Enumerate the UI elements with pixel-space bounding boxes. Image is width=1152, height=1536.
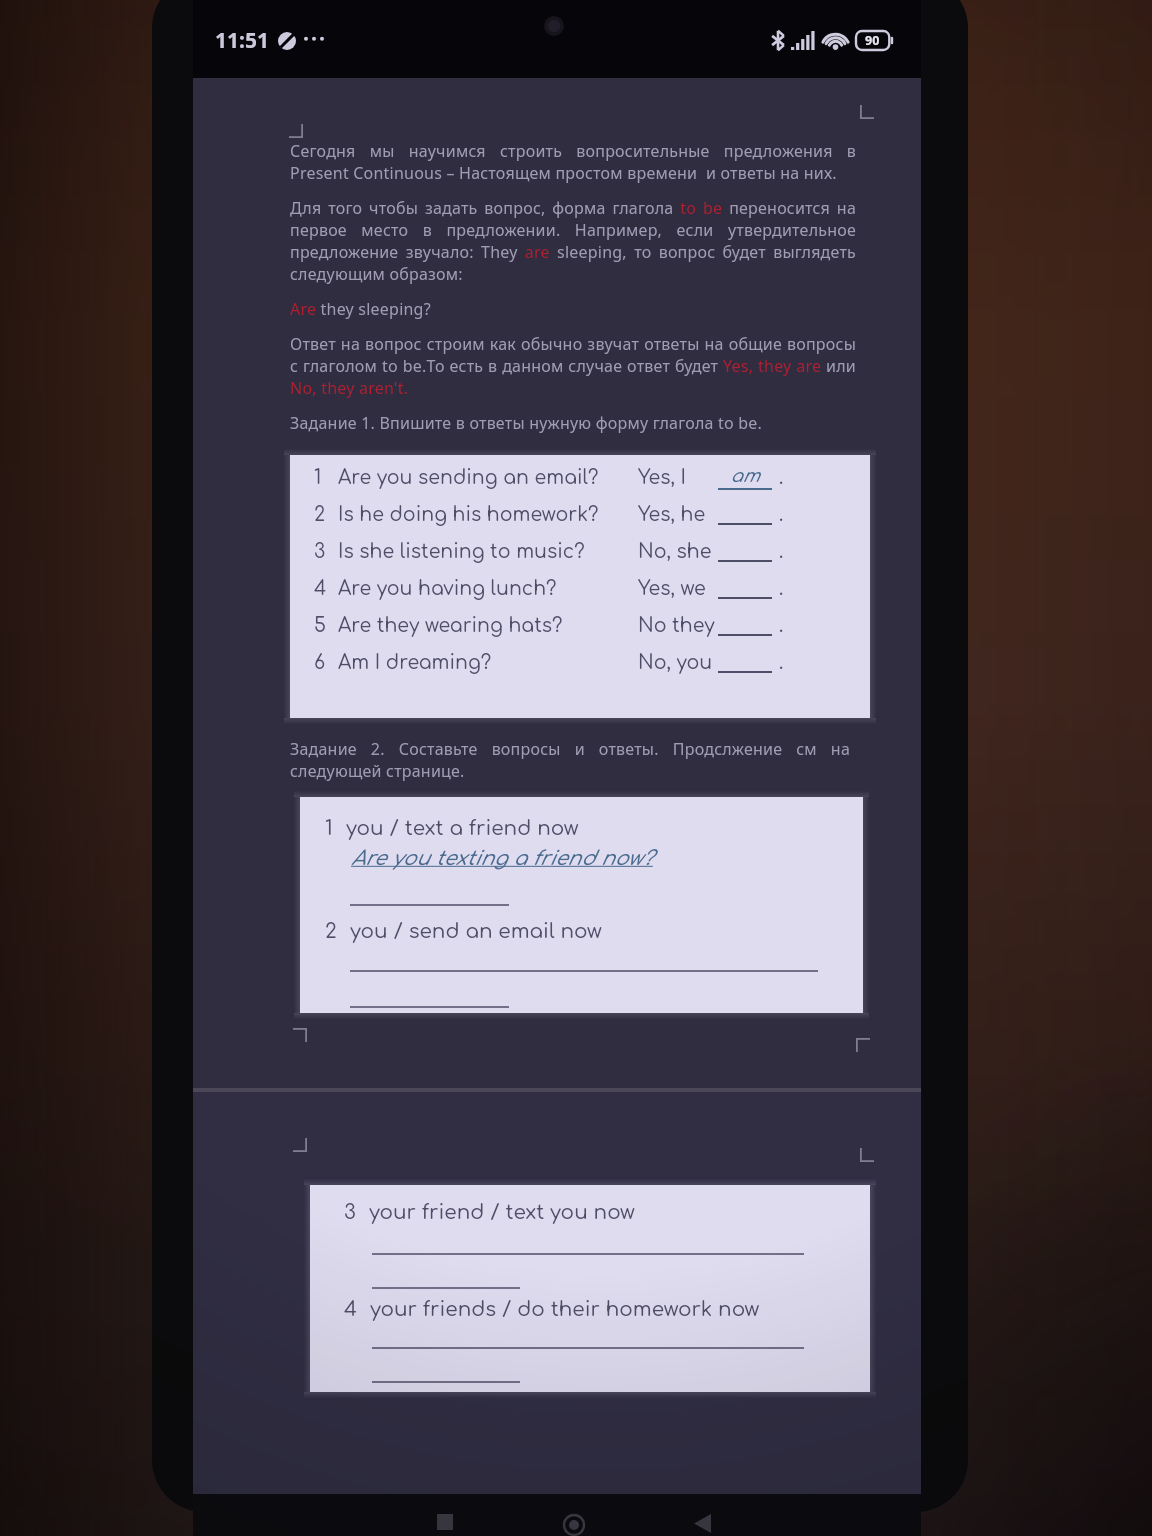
staticText: Yes, he (638, 504, 706, 525)
staticText: 2 (325, 920, 337, 942)
staticText: 2 (314, 504, 326, 525)
staticText: 11:51 (215, 26, 269, 55)
button[interactable]: Document page 1 (193, 78, 921, 1090)
staticText: . (779, 652, 784, 673)
staticText: Is he doing his homework? (338, 504, 599, 525)
staticText: 1 (325, 817, 333, 839)
staticText: Ответ на вопрос строим как обычно звучат… (290, 333, 856, 399)
staticText: Are they sleeping? (290, 298, 431, 320)
staticText: . (779, 615, 784, 636)
staticText: 1 (314, 467, 322, 488)
staticText: 3 (314, 541, 326, 562)
staticText: 6 (314, 652, 326, 673)
staticText: . (779, 578, 784, 599)
staticText: your friend / text you now (369, 1201, 635, 1223)
button[interactable]: Status bar, 11:51, battery 90% (193, 0, 921, 78)
staticText: . (779, 541, 784, 562)
staticText: Yes, I (638, 467, 686, 488)
staticText: am (730, 466, 760, 486)
staticText: Is she listening to music? (338, 541, 585, 562)
staticText: . (779, 504, 784, 525)
staticText: you / text a friend now (346, 817, 579, 839)
staticText: 4 (314, 578, 327, 599)
button[interactable]: Recent apps (425, 1514, 465, 1536)
staticText: . (779, 467, 784, 488)
staticText: Am I dreaming? (338, 652, 492, 673)
button[interactable]: Document page 2 (193, 1092, 921, 1494)
staticText: Are you texting a friend now? (351, 847, 653, 869)
button[interactable]: Home (554, 1514, 594, 1536)
staticText: Are you having lunch? (338, 578, 557, 599)
staticText: Задание 2. Составьте вопросы и ответы. П… (290, 738, 850, 782)
staticText: your friends / do their homework now (370, 1298, 760, 1320)
staticText: No, she (638, 541, 712, 562)
staticText: No they (638, 615, 715, 636)
staticText: Для того чтобы задать вопрос, форма глаг… (290, 197, 856, 285)
staticText: 4 (344, 1298, 357, 1320)
staticText: Yes, we (638, 578, 706, 599)
staticText: No, you (638, 652, 713, 673)
staticText: 3 (344, 1201, 356, 1223)
staticText: Сегодня мы научимся строить вопросительн… (290, 140, 856, 184)
staticText: you / send an email now (350, 920, 602, 942)
staticText: 90 (865, 32, 880, 49)
staticText: 5 (314, 615, 326, 636)
staticText: Are you sending an email? (338, 467, 599, 488)
staticText: Are they wearing hats? (338, 615, 563, 636)
button[interactable]: Back (682, 1514, 722, 1536)
staticText: Задание 1. Впишите в ответы нужную форму… (290, 412, 763, 434)
